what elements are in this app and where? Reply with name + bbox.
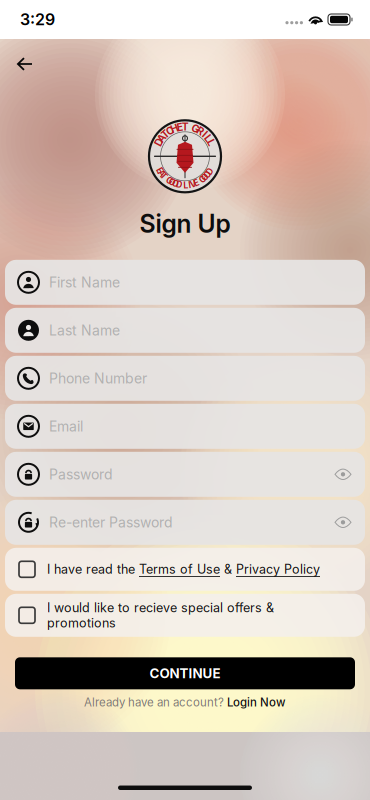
staticText: D — [176, 179, 182, 190]
staticText: Password — [49, 466, 113, 483]
staticText: O — [172, 179, 179, 189]
staticText — [198, 176, 200, 187]
staticText: L — [205, 132, 211, 144]
staticText: I would like to recieve special offers &… — [47, 600, 274, 630]
staticText: E — [157, 165, 162, 175]
staticText: L — [208, 137, 214, 149]
staticText: E — [177, 121, 183, 133]
staticText: Email — [49, 418, 83, 435]
staticText: 3:29 — [20, 10, 55, 29]
button[interactable]: I have read the — [5, 548, 365, 591]
staticText: Last Name — [49, 322, 120, 339]
staticText: C — [166, 125, 173, 137]
button[interactable]: Password — [5, 452, 365, 497]
staticText: V — [190, 179, 196, 189]
staticText: Login Now — [227, 695, 286, 709]
button[interactable]: Email — [5, 404, 365, 449]
button[interactable]: I would like to recieve special offers &… — [5, 594, 365, 637]
staticText — [189, 121, 191, 133]
staticText: A — [158, 132, 166, 144]
button[interactable]: Phone Number — [5, 356, 365, 401]
staticText: G — [192, 123, 200, 135]
staticText: Terms of Use — [139, 562, 220, 577]
button[interactable]: Back — [7, 46, 43, 82]
staticText: D — [207, 166, 213, 177]
staticText: Already have an account? — [84, 695, 224, 709]
staticText: O — [169, 177, 176, 187]
staticText: H — [171, 122, 179, 135]
staticText: T — [161, 171, 167, 181]
staticText: I have read the — [47, 562, 139, 577]
staticText: D — [155, 136, 162, 149]
button[interactable]: Already have an account? — [84, 691, 286, 713]
staticText: G — [166, 175, 172, 186]
staticText: I — [203, 128, 206, 140]
staticText — [181, 180, 183, 190]
staticText: T — [162, 128, 169, 140]
staticText: T — [182, 121, 189, 133]
button[interactable]: Last Name — [5, 308, 365, 353]
button[interactable]: Re-enter Password — [5, 500, 365, 545]
button[interactable]: CONTINUE — [15, 657, 355, 689]
staticText: & — [220, 562, 236, 577]
button[interactable]: First Name — [5, 260, 365, 305]
staticText: Sign Up — [139, 209, 230, 239]
staticText: L — [183, 180, 188, 190]
staticText: Phone Number — [49, 370, 147, 387]
staticText: I — [188, 180, 190, 190]
staticText: First Name — [49, 274, 120, 291]
staticText: Re-enter Password — [49, 514, 173, 531]
staticText: O — [202, 172, 209, 182]
staticText: R — [197, 125, 204, 137]
staticText: O — [204, 169, 211, 180]
staticText: Privacy Policy — [236, 562, 320, 577]
staticText: G — [199, 174, 205, 185]
staticText: E — [194, 178, 199, 188]
staticText: CONTINUE — [149, 665, 220, 681]
staticText: A — [158, 168, 164, 178]
staticText — [165, 173, 167, 184]
